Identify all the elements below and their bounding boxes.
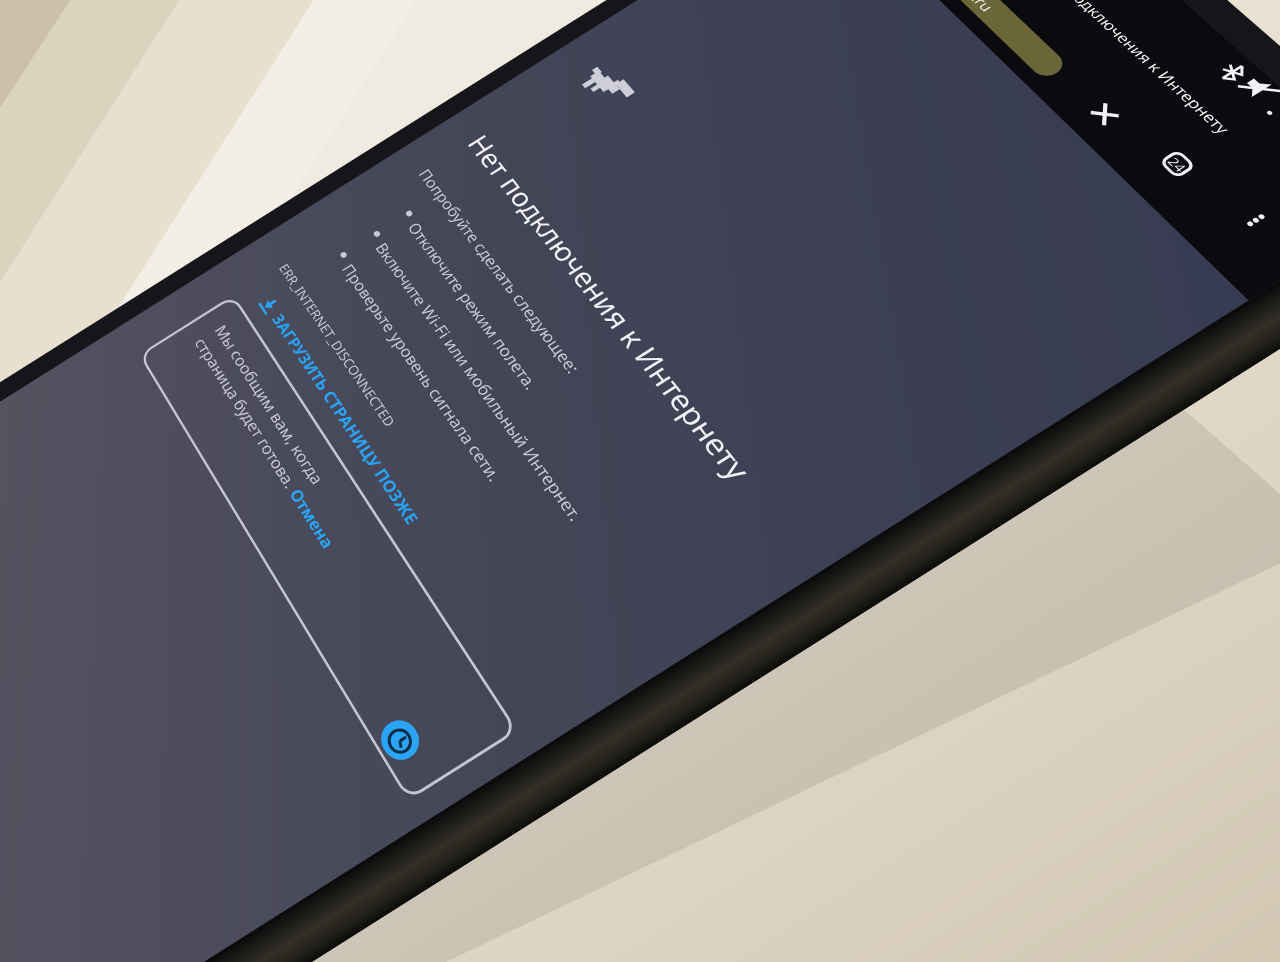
staticText: Попробуйте сделать следующее: bbox=[415, 165, 586, 378]
staticText: ЗАГРУЗИТЬ СТРАНИЦУ ПОЗЖЕ bbox=[268, 310, 424, 529]
staticText: Нет подключения к Интернету bbox=[459, 128, 761, 489]
staticText: страница будет готова. bbox=[191, 333, 304, 496]
staticText: Включите Wi-Fi или мобильный Интернет. bbox=[371, 238, 588, 525]
staticText: news.ru bbox=[941, 0, 999, 15]
staticText: 24 bbox=[1164, 154, 1192, 175]
button[interactable]: ЗАГРУЗИТЬ СТРАНИЦУ ПОЗЖЕ bbox=[256, 292, 424, 529]
button[interactable]: More options bbox=[1239, 207, 1273, 234]
staticText: Отключите режим полета. bbox=[404, 218, 544, 394]
button[interactable]: Отмена bbox=[285, 484, 340, 553]
button[interactable]: Tabs bbox=[1158, 149, 1196, 179]
button[interactable]: Address bar bbox=[932, 0, 1069, 81]
button[interactable]: Мы сообщим вам, когда bbox=[140, 296, 516, 799]
button[interactable]: Download pending bbox=[374, 713, 426, 767]
staticText: Проверьте уровень сигнала сети. bbox=[338, 260, 507, 485]
staticText: Нет подключения к Интернету bbox=[1039, 0, 1236, 138]
staticText: ERR_INTERNET_DISCONNECTED bbox=[275, 260, 400, 431]
button[interactable]: Close tab bbox=[1086, 100, 1123, 129]
staticText: Мы сообщим вам, когда bbox=[211, 321, 329, 488]
